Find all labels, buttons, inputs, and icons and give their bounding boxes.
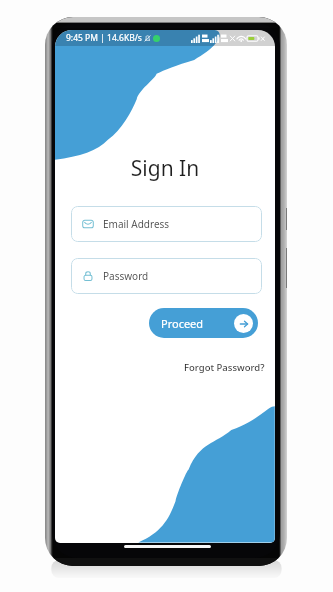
button[interactable]: Forgot Password? [183,360,266,375]
staticText: Password [103,269,149,283]
button[interactable]: Email Address [71,206,262,242]
staticText: 9:45 PM | 14.6KB/s [66,32,142,44]
button[interactable]: Password [71,258,262,294]
staticText: Sign In [55,154,275,183]
staticText: Proceed [161,316,204,331]
staticText: Email Address [103,217,170,231]
button[interactable]: Proceed [149,308,258,338]
staticText: Forgot Password? [184,361,265,374]
